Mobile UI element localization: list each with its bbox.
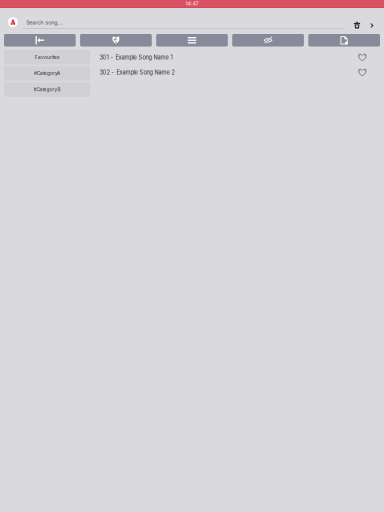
button[interactable]: Favourites bbox=[4, 50, 90, 64]
button[interactable]: Sort bbox=[4, 34, 76, 46]
button[interactable]: Hidden songs bbox=[232, 34, 304, 46]
button[interactable]: Favourites bbox=[80, 34, 152, 46]
button[interactable]: 301 - Example Song Name 1 bbox=[90, 50, 384, 65]
staticText: #CategoryA bbox=[34, 71, 60, 76]
staticText: Search song... bbox=[26, 19, 63, 26]
button[interactable]: All songs bbox=[156, 34, 228, 46]
staticText: 301 - Example Song Name 1 bbox=[99, 54, 172, 61]
button[interactable]: Forward bbox=[364, 6, 380, 35]
button[interactable]: Delete bbox=[350, 7, 364, 35]
staticText: #CategoryB bbox=[33, 87, 60, 92]
staticText: 14:47 bbox=[185, 0, 198, 7]
button[interactable]: 302 - Example Song Name 2 bbox=[90, 65, 384, 80]
button[interactable]: Set lists bbox=[308, 34, 380, 46]
button[interactable]: #CategoryA bbox=[4, 66, 90, 81]
staticText: 302 - Example Song Name 2 bbox=[99, 69, 174, 76]
staticText: Favourites bbox=[35, 54, 59, 60]
button[interactable]: #CategoryB bbox=[4, 82, 90, 97]
